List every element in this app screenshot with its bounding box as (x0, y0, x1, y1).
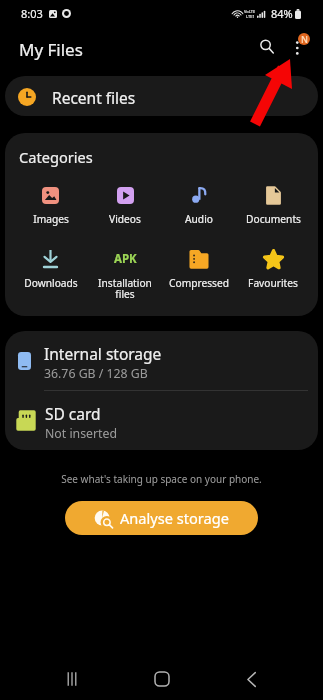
staticText: APK (114, 251, 137, 267)
staticText: Analyse storage (120, 508, 229, 528)
button[interactable]: Videos (88, 184, 162, 226)
button[interactable]: Audio (162, 184, 236, 226)
button[interactable]: Analyse storage (65, 501, 258, 535)
button[interactable]: SD card (5, 391, 318, 450)
staticText: My Files (19, 38, 83, 61)
button[interactable]: Internal storage (5, 331, 318, 390)
button[interactable]: Home (139, 658, 184, 700)
staticText: Internal storage (44, 343, 162, 364)
button[interactable]: Compressed (162, 248, 236, 290)
staticText: Recent files (52, 87, 136, 108)
staticText: 8:03 (21, 6, 43, 21)
staticText: SD card (45, 403, 101, 424)
staticText: Images (33, 212, 69, 226)
button[interactable]: Downloads (13, 248, 88, 290)
button[interactable]: Favourites (236, 248, 310, 290)
staticText: LTE1 (246, 14, 255, 19)
staticText: Compressed (169, 276, 229, 290)
staticText: Categories (19, 147, 93, 167)
staticText: 36.76 GB / 128 GB (44, 365, 148, 382)
button[interactable]: Images (13, 184, 88, 226)
staticText: VoLTE (244, 9, 256, 14)
staticText: N (301, 33, 308, 45)
staticText: Audio (185, 212, 213, 226)
button[interactable]: Back (229, 658, 274, 700)
button[interactable]: APK (88, 248, 162, 301)
staticText: Not inserted (45, 425, 118, 442)
button[interactable]: Documents (236, 184, 310, 226)
staticText: Downloads (24, 276, 78, 290)
staticText: Favourites (248, 276, 298, 290)
button[interactable]: Recents (49, 658, 94, 700)
button[interactable]: More options (277, 27, 319, 69)
staticText: 84% (271, 6, 293, 21)
staticText: Documents (246, 212, 301, 226)
button[interactable]: Recent files (5, 76, 318, 116)
button[interactable]: Search (246, 26, 288, 68)
staticText: Videos (109, 212, 141, 226)
staticText: See what's taking up space on your phone… (0, 472, 323, 486)
staticText: Installation files (98, 276, 152, 301)
